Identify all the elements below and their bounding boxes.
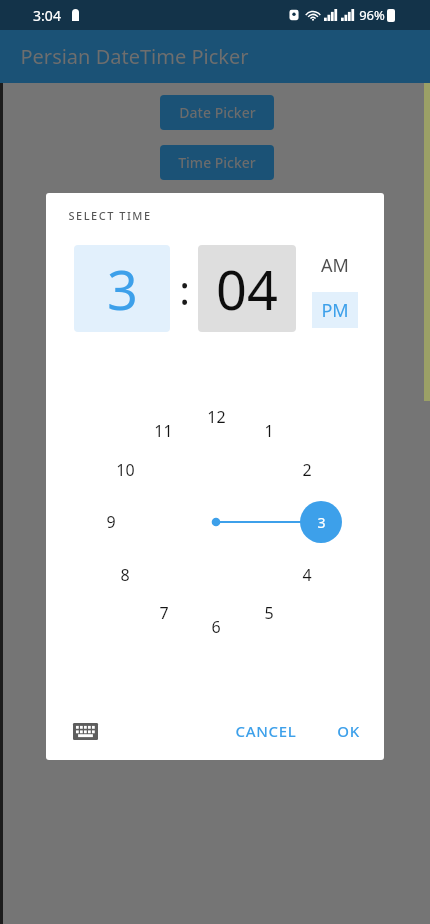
staticText: 96% xyxy=(359,6,385,24)
staticText: 8 xyxy=(120,564,130,586)
button[interactable]: Switch to keyboard input xyxy=(68,717,102,745)
staticText: 11 xyxy=(154,420,173,442)
button[interactable]: 1 xyxy=(251,417,287,445)
button[interactable]: PM xyxy=(312,292,358,328)
button[interactable]: Date Picker xyxy=(160,95,274,130)
button[interactable]: 5 xyxy=(251,599,287,627)
staticText: : xyxy=(179,262,190,316)
button[interactable]: 7 xyxy=(146,599,182,627)
staticText: 04 xyxy=(216,252,278,326)
staticText: 3 xyxy=(317,513,326,532)
staticText: 7 xyxy=(159,602,169,624)
staticText: Date Picker xyxy=(179,103,256,122)
staticText: 6 xyxy=(211,616,221,638)
staticText: 5 xyxy=(264,602,274,624)
button[interactable]: 8 xyxy=(107,561,143,589)
button[interactable]: 2 xyxy=(289,456,325,484)
button[interactable]: 04 xyxy=(198,245,296,332)
button[interactable]: OK xyxy=(323,713,373,749)
staticText: 3:04 xyxy=(33,6,61,25)
staticText: 12 xyxy=(207,406,226,428)
staticText: Time Picker xyxy=(178,153,256,172)
button[interactable]: 11 xyxy=(145,417,181,445)
staticText: 4 xyxy=(302,564,312,586)
button[interactable]: CANCEL xyxy=(221,713,311,749)
button[interactable]: 4 xyxy=(289,561,325,589)
button[interactable]: 12 xyxy=(198,403,234,431)
button[interactable]: Time Picker xyxy=(160,145,274,180)
staticText: 10 xyxy=(116,459,135,481)
staticText: CANCEL xyxy=(235,721,297,741)
button[interactable]: 3 xyxy=(303,508,339,536)
staticText: 3 xyxy=(107,252,138,326)
staticText: SELECT TIME xyxy=(68,208,152,223)
button[interactable]: 3 xyxy=(74,245,170,332)
button[interactable]: 10 xyxy=(107,456,143,484)
staticText: 2 xyxy=(302,459,312,481)
staticText: 1 xyxy=(264,420,274,442)
staticText: PM xyxy=(321,298,349,323)
button[interactable]: 6 xyxy=(198,613,234,641)
staticText: AM xyxy=(321,253,349,278)
staticText: Persian DateTime Picker xyxy=(20,43,249,70)
button[interactable]: AM xyxy=(312,247,358,283)
staticText: 9 xyxy=(106,511,116,533)
staticText: OK xyxy=(337,721,360,741)
button[interactable]: 9 xyxy=(93,508,129,536)
